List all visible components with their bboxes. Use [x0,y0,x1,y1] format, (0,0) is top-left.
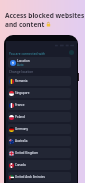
button[interactable]: Poland [8,112,71,122]
button[interactable]: Location [8,57,71,68]
staticText: Germany [15,127,28,131]
staticText: Access blocked websites [5,11,85,20]
button[interactable]: United Arab Emirates [8,172,71,182]
button[interactable]: Romania [8,76,71,86]
staticText: Location [17,59,30,63]
button[interactable]: Singapore [8,88,71,98]
button[interactable]: Australia [8,136,71,146]
button[interactable]: Refresh [69,50,74,55]
staticText: and content [5,20,46,29]
staticText: Singapore [15,91,30,95]
button[interactable]: Germany [8,124,71,134]
staticText: United Arab Emirates [15,175,45,179]
staticText: Canada [15,163,26,167]
staticText: United Kingdom [15,151,39,155]
staticText: Australia [15,139,28,143]
staticText: Poland [15,115,25,119]
staticText: Change location [9,70,34,74]
button[interactable]: United Kingdom [8,148,71,158]
staticText: Romania [15,79,28,83]
button[interactable]: Canada [8,160,71,170]
staticText: You are connected with [9,51,46,55]
button[interactable]: France [8,100,71,110]
staticText: Auto [17,63,24,67]
staticText: France [15,103,25,107]
